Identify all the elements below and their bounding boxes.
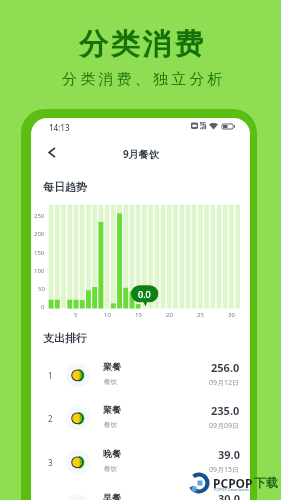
staticText: 50 [38, 285, 45, 293]
staticText: 0.0 [138, 288, 151, 300]
staticText: PCPOP Downloads [214, 487, 249, 492]
staticText: 餐饮 [104, 465, 117, 473]
staticText: 2 [48, 413, 53, 424]
staticText: 14:13 [49, 122, 70, 133]
staticText: 200 [34, 230, 45, 238]
staticText: 235.0 [211, 403, 240, 418]
staticText: 150 [34, 249, 45, 257]
staticText: 15 [135, 311, 142, 319]
button[interactable]: 2 [31, 396, 250, 439]
staticText: 聚餐 [103, 404, 121, 415]
staticText: PCPOP [213, 475, 253, 491]
staticText: 30.0 [218, 491, 240, 500]
staticText: 10 [104, 311, 111, 319]
staticText: 支出排行 [43, 331, 87, 345]
staticText: 5 [74, 311, 78, 319]
staticText: 9月餐饮 [123, 147, 159, 161]
staticText: 早餐 [103, 492, 121, 500]
staticText: 餐饮 [104, 378, 117, 386]
button[interactable]: 4 [31, 484, 250, 500]
staticText: 39.0 [218, 447, 240, 462]
staticText: 每日趋势 [43, 180, 87, 194]
staticText: 09月09日 [209, 421, 240, 431]
staticText: 0 [41, 303, 45, 311]
staticText: 100 [34, 267, 45, 275]
button[interactable]: 3 [31, 440, 250, 483]
staticText: 餐饮 [104, 421, 117, 429]
staticText: 256.0 [211, 360, 240, 375]
staticText: 下载 [254, 475, 278, 490]
staticText: 1 [48, 370, 53, 381]
staticText: 09月15日 [209, 465, 240, 475]
staticText: 晚餐 [103, 448, 121, 459]
staticText: 09月12日 [209, 378, 240, 388]
staticText: 3 [48, 457, 53, 468]
button[interactable]: Back [41, 142, 61, 162]
staticText: 30 [228, 311, 235, 319]
button[interactable]: 1 [31, 353, 250, 396]
staticText: 250 [34, 212, 45, 220]
staticText: 20 [166, 311, 173, 319]
staticText: 分类消费 [79, 26, 207, 63]
staticText: 聚餐 [103, 361, 121, 372]
staticText: 分类消费、独立分析 [62, 70, 226, 89]
staticText: 25 [197, 311, 204, 319]
